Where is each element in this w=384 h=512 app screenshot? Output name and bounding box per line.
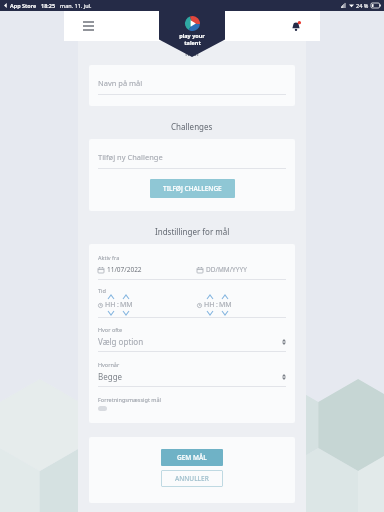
button[interactable]: Tilføj ny Challenge [98,152,286,169]
staticText: Tilføj ny Challenge [98,152,163,162]
button[interactable]: Forretningsmæssigt mål toggle [98,406,107,411]
staticText: Navn på mål [98,78,143,88]
button[interactable]: GEM MÅL [161,449,223,466]
staticText: HH [204,300,215,310]
staticText: 24 % [356,2,369,9]
staticText: Challenges [171,121,213,132]
staticText: talent [184,39,201,46]
button[interactable]: Begge [98,371,286,387]
staticText: play your [179,32,205,39]
button[interactable]: Navn på mål [98,78,286,95]
staticText: MM [120,300,133,310]
staticText: Mål [185,47,199,58]
staticText: Forretningsmæssigt mål [98,396,161,403]
button[interactable]: HH [197,295,286,315]
staticText: GEM MÅL [177,453,207,462]
staticText: App Store [10,2,37,9]
button[interactable]: Vælg option [98,336,286,352]
staticText: Begge [98,371,123,382]
staticText: 11/07/2022 [107,265,142,274]
staticText: Aktiv fra [98,254,120,261]
staticText: : [216,300,218,310]
button[interactable]: Menu [78,16,98,36]
staticText: Hvornår [98,361,120,368]
staticText: 18:25 [41,2,56,9]
staticText: Vælg option [98,336,144,347]
button[interactable]: TILFØJ CHALLENGE [150,179,235,198]
staticText: DD/MM/YYYY [206,265,247,274]
button[interactable]: HH [98,295,187,315]
staticText: HH [105,300,116,310]
staticText: Tid [98,287,106,294]
staticText: : [117,300,119,310]
button[interactable]: ANNULLER [161,470,223,487]
button[interactable]: Notifications [286,16,306,36]
staticText: Indstillinger for mål [155,226,230,237]
staticText: man. 11. jul. [60,2,92,9]
staticText: MM [219,300,232,310]
staticText: Hvor ofte [98,326,123,333]
staticText: TILFØJ CHALLENGE [163,184,222,193]
staticText: ANNULLER [175,474,209,483]
button[interactable]: 11/07/2022 [98,265,187,274]
button[interactable]: DD/MM/YYYY [197,265,286,274]
